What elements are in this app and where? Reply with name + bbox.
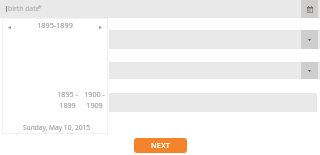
button[interactable]: Open calendar [301, 0, 318, 18]
button[interactable]: Previous years [4, 22, 15, 33]
staticText: 1909 [86, 100, 103, 110]
button[interactable]: Open dropdown [301, 62, 318, 79]
staticText: 1895 - [57, 89, 78, 99]
button[interactable]: Open dropdown [301, 30, 318, 49]
button[interactable]: Sunday, May 10, 2015 [22, 122, 91, 133]
staticText: Sunday, May 10, 2015 [23, 123, 90, 132]
staticText: 1900 - [84, 89, 105, 99]
button[interactable]: Next years [95, 22, 106, 33]
staticText: 1895-1899 [37, 20, 73, 30]
button[interactable]: NEXT [134, 138, 187, 153]
button[interactable]: 1900 - [81, 89, 107, 110]
button[interactable]: 1895-1899 [13, 19, 96, 31]
staticText: birth date [8, 4, 40, 13]
staticText: NEXT [151, 141, 171, 151]
staticText: * [38, 3, 42, 12]
button[interactable]: 1895 - [54, 89, 80, 110]
staticText: 1899 [59, 100, 76, 110]
